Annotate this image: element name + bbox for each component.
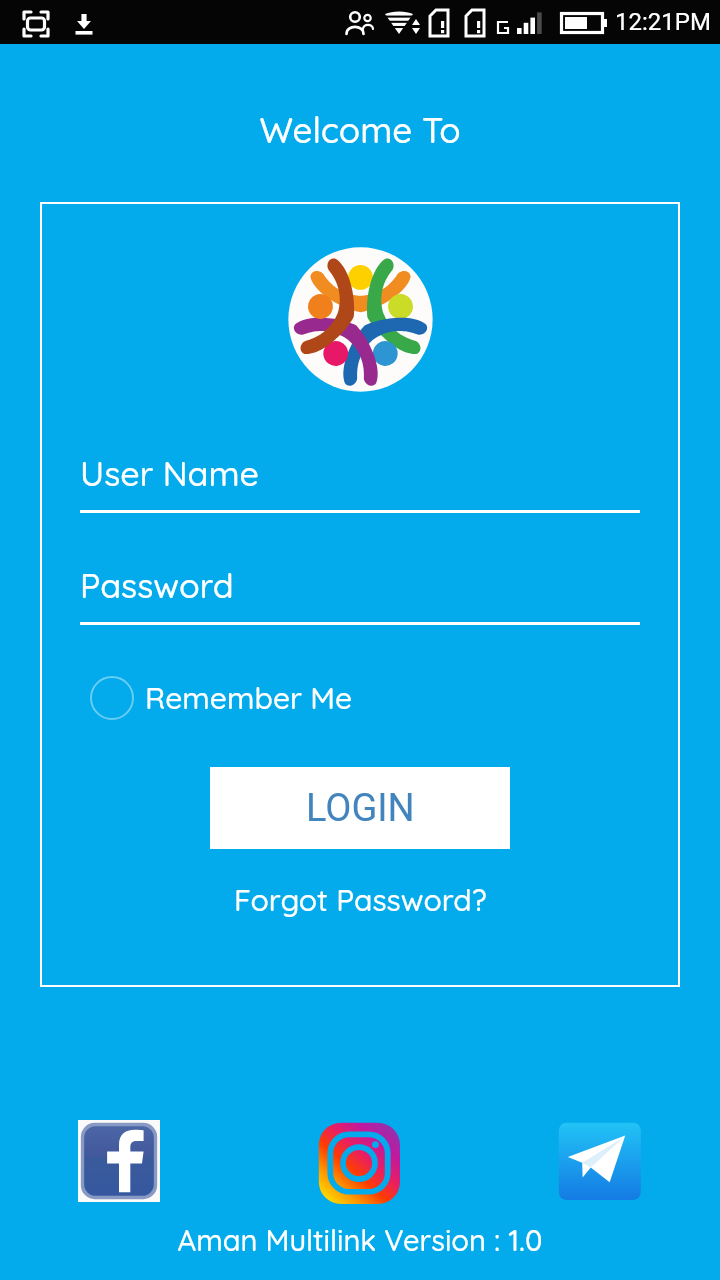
button[interactable]: Facebook xyxy=(78,1120,160,1202)
staticText: User Name xyxy=(80,452,260,495)
button[interactable]: Remember Me xyxy=(90,670,353,726)
staticText: Remember Me xyxy=(145,679,353,717)
staticText: LOGIN xyxy=(306,786,415,831)
button[interactable]: LOGIN xyxy=(210,767,510,849)
staticText: Password xyxy=(80,564,234,607)
staticText: Aman Multilink Version : 1.0 xyxy=(0,1222,720,1258)
button[interactable]: Telegram xyxy=(558,1120,640,1202)
button[interactable]: User Name xyxy=(80,442,640,513)
button[interactable]: Forgot Password? xyxy=(228,875,493,925)
staticText: Welcome To xyxy=(0,108,720,152)
staticText: 12:21PM xyxy=(615,8,711,36)
button[interactable]: Instagram xyxy=(318,1120,400,1202)
button[interactable]: Password xyxy=(80,554,640,625)
